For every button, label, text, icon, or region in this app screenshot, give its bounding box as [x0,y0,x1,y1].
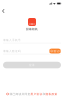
button[interactable]: 用户协议 [30,92,42,96]
staticText: 请输入手机号 [3,38,21,42]
button[interactable]: 获取验证码 [49,49,61,53]
staticText: 甜椒相机 [26,27,38,31]
staticText: 我已阅读并同意 [9,92,30,96]
staticText: 请输入验证码 [3,49,21,53]
button[interactable]: Agree to terms [7,93,9,95]
button[interactable]: 隐私政策 [45,92,57,96]
button[interactable]: 登录 [3,62,61,68]
staticText: 获取验证码 [47,49,62,53]
staticText: 用户协议 [30,92,42,96]
staticText: 和 [42,92,45,96]
button[interactable]: Back [0,7,7,15]
staticText: 隐私政策 [45,92,57,96]
staticText: 登录 [29,63,35,67]
